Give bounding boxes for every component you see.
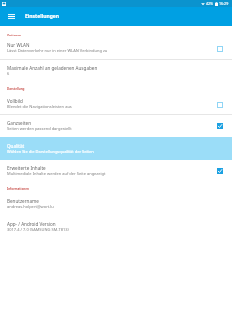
staticText: 3017.4 / 7.0 (SAMSUNG SM-T813) xyxy=(7,227,69,232)
staticText: 42% xyxy=(206,1,214,6)
button[interactable]: Nur WLAN xyxy=(0,36,232,59)
button[interactable]: App- / Android Version xyxy=(0,215,232,237)
staticText: Lässt Datenverkehr nur in einer WLAN Ver… xyxy=(7,48,108,53)
button[interactable]: Menu xyxy=(5,10,18,23)
staticText: 6 xyxy=(7,71,10,76)
staticText: Ganzseiten xyxy=(7,120,31,126)
staticText: Darstellung xyxy=(7,87,25,91)
staticText: Multimediale Inhalte werden auf der Seit… xyxy=(7,171,106,176)
staticText: Benutzername xyxy=(7,198,39,204)
staticText: Einstellungen xyxy=(25,13,60,20)
staticText: andreas.holpert@wort.lu xyxy=(7,204,54,209)
button[interactable]: Benutzername xyxy=(0,192,232,215)
staticText: Erweiterte Inhalte xyxy=(7,165,46,171)
staticText: Nur WLAN xyxy=(7,42,30,48)
staticText: Wählen Sie die Darstellungsqualität der … xyxy=(7,149,94,154)
staticText: Qualität xyxy=(7,143,25,149)
button[interactable]: Maximale Anzahl an geladenen Ausgaben xyxy=(0,60,232,81)
staticText: Maximale Anzahl an geladenen Ausgaben xyxy=(7,65,98,71)
button[interactable]: Vollbild xyxy=(0,92,232,114)
button[interactable]: Ganzseiten xyxy=(0,115,232,137)
staticText: Seiten werden passend dargestellt xyxy=(7,126,72,131)
staticText: Vollbild xyxy=(7,98,23,104)
staticText: Informationen xyxy=(7,187,29,191)
staticText: Optionen xyxy=(7,34,22,38)
staticText: App- / Android Version xyxy=(7,221,56,227)
staticText: 16:29 xyxy=(219,1,229,6)
staticText: Blendet die Navigationsleisten aus xyxy=(7,104,72,109)
button[interactable]: Qualität xyxy=(0,137,232,160)
button[interactable]: Erweiterte Inhalte xyxy=(0,160,232,180)
